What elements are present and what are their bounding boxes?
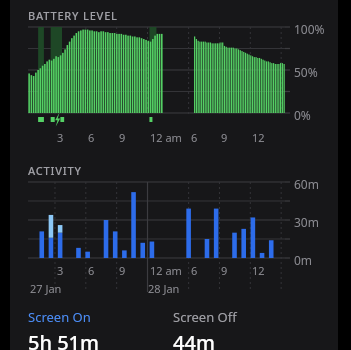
staticText: 60m bbox=[294, 176, 319, 192]
staticText: 27 Jan bbox=[30, 281, 62, 296]
staticText: 6 bbox=[88, 263, 95, 278]
staticText: 3 bbox=[57, 263, 64, 278]
staticText: 9 bbox=[119, 263, 126, 278]
staticText: 28 Jan bbox=[148, 281, 180, 296]
staticText: 12 bbox=[252, 263, 265, 278]
staticText: 5h 51m bbox=[28, 329, 99, 350]
staticText: 12 am bbox=[150, 130, 182, 145]
staticText: 0m bbox=[294, 252, 313, 268]
staticText: 0% bbox=[294, 107, 311, 123]
staticText: 9 bbox=[119, 130, 126, 145]
staticText: Screen On bbox=[28, 308, 91, 326]
staticText: BATTERY LEVEL bbox=[28, 8, 118, 23]
staticText: 50% bbox=[294, 64, 318, 80]
staticText: 12 am bbox=[150, 263, 182, 278]
staticText: ACTIVITY bbox=[28, 163, 82, 178]
staticText: 9 bbox=[221, 130, 228, 145]
staticText: 44m bbox=[173, 329, 215, 350]
button[interactable]: Screen Off bbox=[173, 308, 323, 350]
staticText: 6 bbox=[191, 263, 198, 278]
staticText: Screen Off bbox=[173, 308, 237, 326]
staticText: 6 bbox=[88, 130, 95, 145]
staticText: 12 bbox=[252, 130, 265, 145]
staticText: 9 bbox=[221, 263, 228, 278]
staticText: 3 bbox=[57, 130, 64, 145]
staticText: 100% bbox=[294, 21, 325, 37]
staticText: 30m bbox=[294, 214, 319, 230]
staticText: 6 bbox=[191, 130, 198, 145]
button[interactable]: Screen On bbox=[28, 308, 173, 350]
